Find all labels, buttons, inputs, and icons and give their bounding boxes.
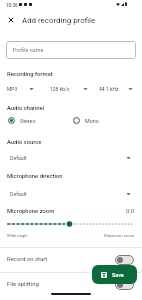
button[interactable]: Close bbox=[4, 13, 18, 27]
staticText: File splitting bbox=[7, 281, 39, 288]
staticText: Save bbox=[112, 272, 124, 278]
button[interactable]: Mono bbox=[73, 117, 99, 124]
staticText: 128 kb/s bbox=[50, 86, 70, 92]
staticText: Wide angle bbox=[7, 233, 28, 238]
staticText: Stereo bbox=[20, 118, 36, 124]
button[interactable]: Microphone zoom slider bbox=[6, 218, 136, 230]
staticText: 44.1 kHz bbox=[99, 86, 119, 92]
button[interactable]: Stereo bbox=[8, 117, 36, 124]
button[interactable]: MP3 bbox=[7, 86, 34, 92]
staticText: Default bbox=[10, 191, 27, 197]
staticText: Add recording profile bbox=[22, 16, 96, 25]
staticText: Audio channel bbox=[7, 105, 45, 112]
staticText: Profile name bbox=[13, 47, 44, 53]
staticText: Default bbox=[10, 155, 27, 161]
staticText: Microphone direction bbox=[7, 173, 63, 180]
staticText: 0.0 bbox=[126, 208, 135, 215]
staticText: Microphone zoom bbox=[7, 208, 55, 215]
button[interactable]: Default bbox=[7, 188, 131, 199]
staticText: Audio source bbox=[7, 139, 42, 146]
button[interactable]: 44.1 kHz bbox=[99, 86, 133, 92]
button[interactable]: Record on start bbox=[7, 247, 134, 272]
button[interactable]: File splitting bbox=[7, 272, 134, 297]
button[interactable]: Default bbox=[7, 152, 131, 163]
staticText: MP3 bbox=[7, 86, 18, 92]
button[interactable]: Save bbox=[92, 265, 137, 284]
staticText: Record on start bbox=[7, 256, 48, 263]
staticText: 10:26 bbox=[6, 3, 18, 8]
button[interactable]: 128 kb/s bbox=[50, 86, 88, 92]
staticText: Recording format bbox=[7, 71, 53, 78]
staticText: Maximum zoom bbox=[104, 233, 135, 238]
button[interactable]: Profile name bbox=[6, 41, 136, 59]
staticText: Mono bbox=[85, 118, 99, 124]
